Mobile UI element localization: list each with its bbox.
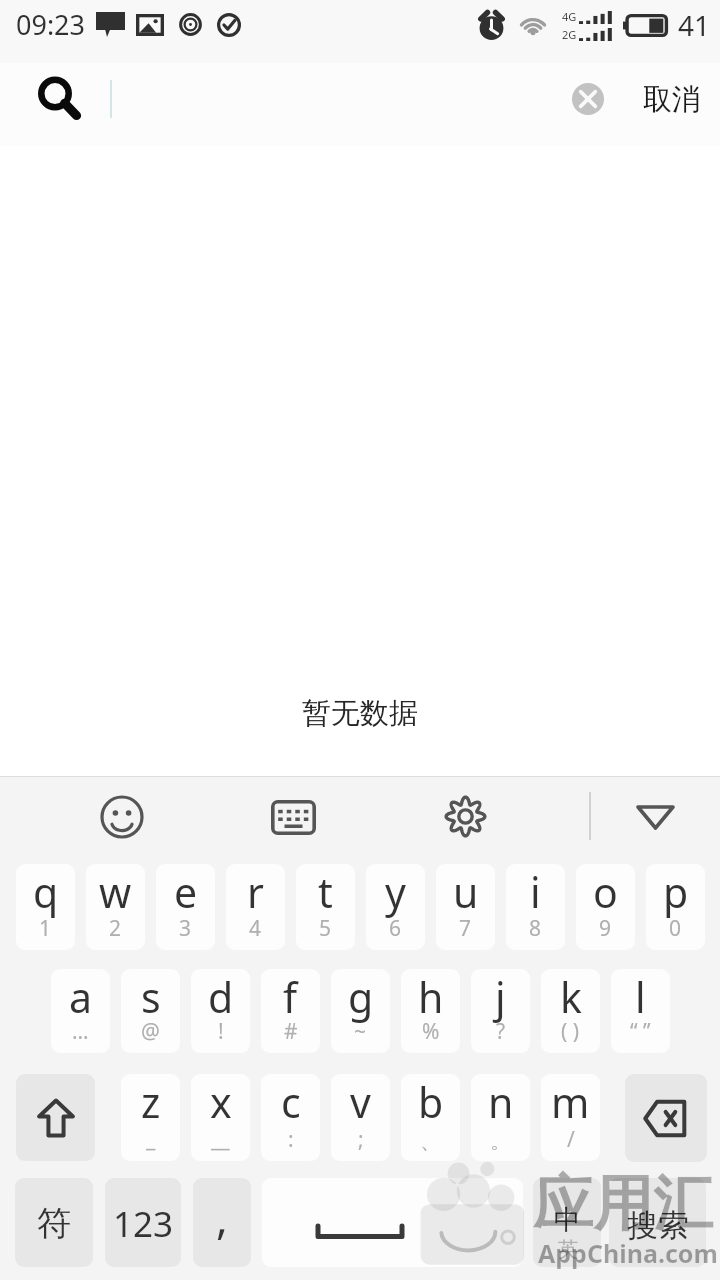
staticText: 暂无数据 [0,695,720,732]
staticText: 8 [529,914,542,943]
button[interactable]: Settings [444,795,487,838]
staticText: … [72,1017,89,1046]
staticText: ( ) [561,1017,580,1046]
button[interactable]: d [191,969,250,1053]
staticText: 、 [420,1128,441,1154]
button[interactable]: i [506,864,565,950]
staticText: a [69,969,93,1025]
staticText: q [33,864,59,920]
staticText: d [208,969,234,1025]
staticText: 41 [678,6,711,44]
button[interactable]: 123 [105,1178,181,1267]
button[interactable]: c [261,1074,320,1161]
button[interactable]: , [193,1178,251,1267]
staticText: 。 [490,1128,511,1154]
staticText: 2G [562,27,577,41]
staticText: 2 [109,914,122,943]
button[interactable]: g [331,969,390,1053]
staticText: p [663,864,689,920]
staticText: @ [141,1017,160,1046]
staticText: c [281,1074,301,1130]
button[interactable]: 搜索 [609,1178,706,1267]
staticText: AppChina.com [538,1236,718,1270]
staticText: ; [358,1125,364,1154]
staticText: y [385,864,406,920]
button[interactable]: v [331,1074,390,1161]
button[interactable]: Switch keyboard [271,800,316,835]
staticText: 取消 [643,81,701,118]
button[interactable]: Space [262,1178,523,1267]
staticText: _ [146,1125,156,1154]
button[interactable]: Hide keyboard [636,805,675,830]
staticText: l [635,969,646,1025]
staticText: m [551,1074,590,1130]
button[interactable]: Shift [16,1074,95,1161]
staticText: 中 [554,1203,581,1237]
staticText: # [284,1017,298,1046]
button[interactable]: 符 [15,1178,93,1267]
button[interactable]: a [51,969,110,1053]
staticText: i [530,864,541,920]
staticText: / [567,1125,575,1154]
staticText: g [348,969,374,1025]
staticText: t [318,864,333,920]
staticText: j [495,969,506,1025]
button[interactable]: Clear text [567,78,609,120]
button[interactable]: e [156,864,215,950]
button[interactable]: m [541,1074,600,1161]
staticText: w [99,864,132,920]
staticText: , [216,1187,228,1247]
staticText: 123 [113,1200,174,1248]
button[interactable]: x [191,1074,250,1161]
button[interactable]: Emoji [100,795,144,839]
button[interactable]: n [471,1074,530,1161]
staticText: 0 [669,914,682,943]
staticText: k [560,969,582,1025]
button[interactable]: y [366,864,425,950]
button[interactable]: Backspace [625,1074,707,1162]
staticText: % [422,1017,440,1046]
staticText: 英 [558,1237,578,1262]
staticText: 6 [389,914,402,943]
button[interactable]: f [261,969,320,1053]
staticText: 9 [599,914,612,943]
button[interactable]: 取消 [624,67,720,132]
button[interactable]: p [646,864,705,950]
staticText: z [141,1074,161,1130]
staticText: 应用汇 [533,1166,713,1242]
staticText: 3 [179,914,192,943]
staticText: x [210,1074,232,1130]
staticText: 1 [39,914,52,943]
staticText: : [288,1125,294,1154]
button[interactable]: 中 [533,1178,601,1267]
button[interactable]: j [471,969,530,1053]
staticText: r [247,864,264,920]
staticText: ? [496,1017,506,1046]
button[interactable]: Search [37,76,82,121]
button[interactable]: t [296,864,355,950]
button[interactable]: o [576,864,635,950]
button[interactable]: u [436,864,495,950]
staticText: 7 [459,914,472,943]
button[interactable]: s [121,969,180,1053]
staticText: 4G [562,9,577,24]
button[interactable]: b [401,1074,460,1161]
staticText: f [283,969,298,1025]
button[interactable]: z [121,1074,180,1161]
button[interactable]: q [16,864,75,950]
button[interactable]: l [611,969,670,1053]
staticText: 搜索 [627,1206,689,1245]
staticText: e [174,864,198,920]
staticText: u [453,864,479,920]
staticText: 09:23 [16,6,86,43]
button[interactable]: h [401,969,460,1053]
staticText: n [488,1074,514,1130]
button[interactable]: r [226,864,285,950]
staticText: 5 [319,914,332,943]
staticText: __ [211,1125,230,1154]
staticText: h [418,969,444,1025]
staticText: ! [218,1017,224,1046]
button[interactable]: k [541,969,600,1053]
button[interactable]: w [86,864,145,950]
staticText: s [141,969,161,1025]
